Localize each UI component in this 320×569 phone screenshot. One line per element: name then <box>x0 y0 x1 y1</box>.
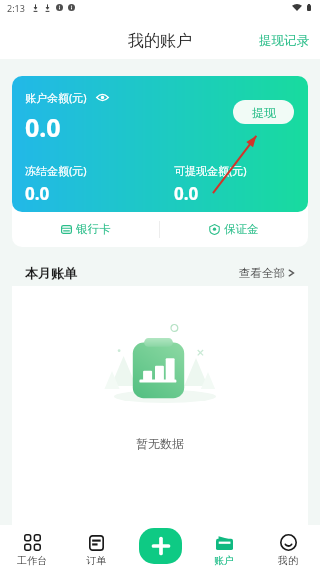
button[interactable]: 我的 <box>256 525 320 569</box>
staticText: 我的 <box>278 554 298 567</box>
staticText: 本月账单 <box>25 265 77 281</box>
staticText: 提现 <box>252 105 276 120</box>
button[interactable]: 提现 <box>233 100 294 124</box>
staticText: 冻结金额(元) <box>25 163 87 178</box>
button[interactable]: 账户 <box>192 525 256 569</box>
staticText: 查看全部 <box>239 266 285 280</box>
staticText: 提现记录 <box>259 33 309 49</box>
button[interactable]: 提现记录 <box>248 25 320 57</box>
staticText: 0.0 <box>25 110 61 144</box>
button[interactable]: 保证金 <box>160 212 308 246</box>
staticText: 银行卡 <box>76 222 111 236</box>
staticText: 订单 <box>86 554 106 567</box>
staticText: 保证金 <box>224 222 259 236</box>
staticText: 暂无数据 <box>136 436 184 451</box>
button[interactable]: 工作台 <box>0 525 64 569</box>
staticText: 账户余额(元) <box>25 90 87 105</box>
staticText: 0.0 <box>174 182 199 205</box>
button[interactable]: 银行卡 <box>12 212 159 246</box>
button[interactable]: 订单 <box>64 525 128 569</box>
staticText: 2:13 <box>7 2 25 14</box>
button[interactable]: 新建 <box>139 528 182 564</box>
staticText: 账户 <box>214 554 234 567</box>
button[interactable]: 查看全部 <box>239 262 295 284</box>
staticText: 工作台 <box>17 554 47 567</box>
staticText: 0.0 <box>25 182 50 205</box>
staticText: 可提现金额(元) <box>174 163 247 178</box>
staticText: 我的账户 <box>128 31 192 51</box>
